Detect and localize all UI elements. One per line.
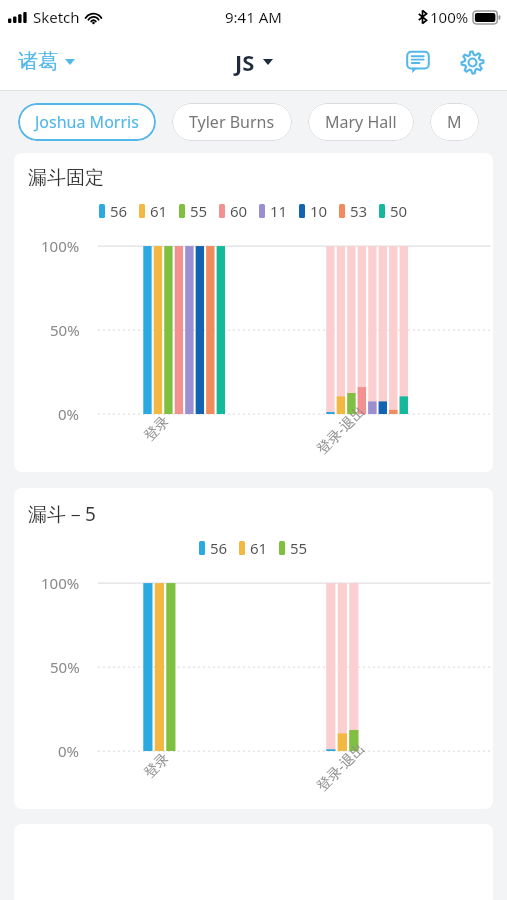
staticText: M [447, 111, 462, 133]
staticText: Mary Hall [325, 111, 397, 133]
staticText: 55 [190, 201, 208, 221]
button[interactable]: M [430, 103, 479, 141]
staticText: 50 [390, 201, 408, 221]
staticText: 登录-退出 [312, 401, 369, 458]
staticText: 登录 [141, 750, 173, 782]
staticText: 100% [41, 573, 80, 593]
staticText: 55 [290, 538, 308, 558]
staticText: 50% [50, 657, 80, 677]
staticText: 61 [250, 538, 268, 558]
staticText: 登录-退出 [312, 738, 369, 795]
staticText: 诸葛 [18, 49, 58, 74]
button[interactable]: Joshua Morris [18, 103, 156, 141]
button[interactable]: Tyler Burns [172, 103, 292, 141]
staticText: JS [235, 47, 255, 77]
button[interactable]: Settings [451, 41, 493, 83]
staticText: 56 [210, 538, 228, 558]
staticText: 50% [50, 320, 80, 340]
staticText: 60 [230, 201, 248, 221]
staticText: 61 [150, 201, 168, 221]
staticText: 100% [430, 7, 469, 27]
staticText: 10 [310, 201, 328, 221]
staticText: 漏斗固定 [28, 166, 104, 190]
button[interactable]: 诸葛 [14, 45, 79, 78]
staticText: 登录 [141, 413, 173, 445]
staticText: Sketch [33, 7, 80, 27]
button[interactable]: 漏斗－5 [14, 488, 493, 809]
staticText: 100% [41, 236, 80, 256]
staticText: 0% [58, 741, 80, 761]
staticText: 9:41 AM [225, 7, 282, 27]
button[interactable]: JS [231, 43, 277, 81]
staticText: Tyler Burns [189, 111, 275, 133]
staticText: 漏斗－5 [28, 501, 96, 527]
staticText: 53 [350, 201, 368, 221]
staticText: 56 [110, 201, 128, 221]
button[interactable]: Messages [397, 41, 439, 83]
staticText: 11 [270, 201, 288, 221]
button[interactable]: 漏斗固定 [14, 153, 493, 472]
staticText: 0% [58, 404, 80, 424]
staticText: Joshua Morris [35, 111, 139, 133]
button[interactable]: Mary Hall [308, 103, 414, 141]
